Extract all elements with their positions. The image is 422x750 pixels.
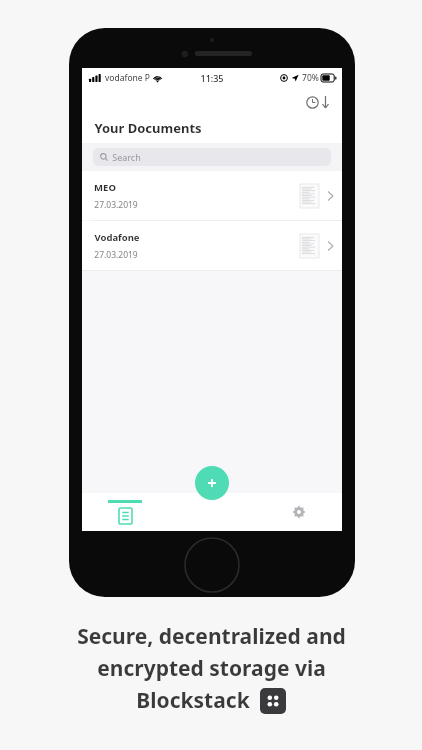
staticText: Blockstack xyxy=(136,686,250,715)
staticText: Search xyxy=(112,151,141,163)
button[interactable]: MEO xyxy=(82,171,342,220)
staticText: 70% xyxy=(302,72,319,84)
staticText: encrypted storage via xyxy=(97,654,326,683)
button[interactable]: Search xyxy=(93,148,331,166)
button[interactable]: Add document xyxy=(195,466,229,500)
button[interactable]: Sort by date xyxy=(306,95,330,109)
staticText: 27.03.2019 xyxy=(94,249,138,261)
staticText: 11:35 xyxy=(200,72,224,84)
staticText: vodafone P xyxy=(105,72,150,84)
button[interactable]: Documents xyxy=(82,493,168,531)
staticText: Vodafone xyxy=(94,231,140,244)
staticText: 27.03.2019 xyxy=(94,199,138,211)
staticText: Secure, decentralized and xyxy=(77,622,346,651)
button[interactable]: Settings xyxy=(255,493,342,531)
staticText: Your Documents xyxy=(94,119,202,137)
staticText: MEO xyxy=(94,181,116,194)
button[interactable]: Vodafone xyxy=(82,221,342,270)
